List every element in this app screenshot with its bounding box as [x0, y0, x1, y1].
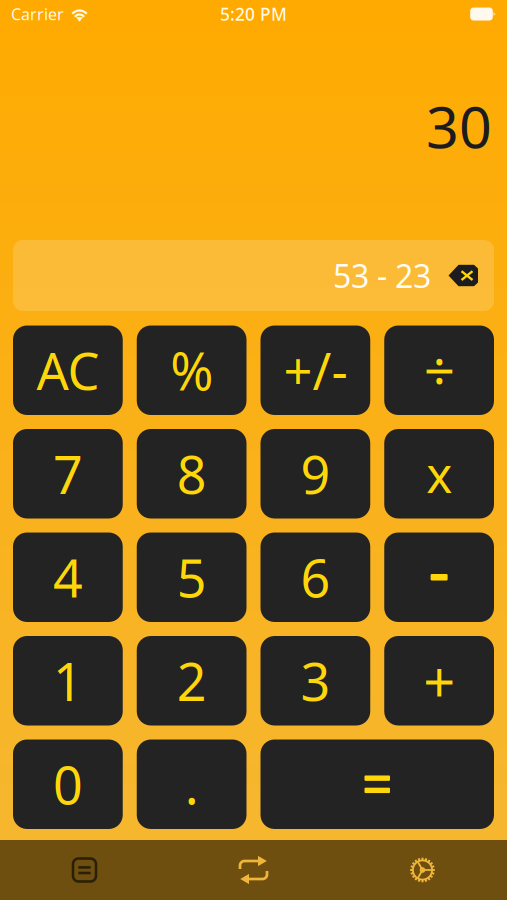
staticText: 9 [300, 439, 330, 508]
button[interactable]: . [137, 739, 247, 829]
staticText: 1 [53, 646, 83, 715]
button[interactable]: + [384, 636, 494, 725]
staticText: % [170, 336, 213, 405]
button[interactable]: Equals [260, 739, 494, 829]
staticText: x [426, 441, 452, 506]
button[interactable]: 5 [137, 532, 247, 622]
button[interactable]: Delete [448, 263, 478, 288]
staticText: 8 [177, 439, 207, 508]
staticText: 7 [53, 439, 83, 508]
button[interactable]: 3 [260, 636, 370, 725]
button[interactable]: % [137, 325, 247, 415]
staticText: + [423, 644, 455, 718]
button[interactable]: 2 [137, 636, 247, 725]
button[interactable]: 0 [13, 739, 123, 829]
button[interactable]: x [384, 429, 494, 518]
button[interactable]: Converter [169, 840, 338, 900]
staticText: 5:20 PM [220, 2, 287, 25]
staticText: 6 [300, 543, 330, 612]
staticText: 4 [53, 543, 83, 612]
button[interactable]: AC [13, 325, 123, 415]
button[interactable]: Calculator [0, 840, 169, 900]
staticText: 53 - 23 [333, 254, 431, 297]
staticText: AC [36, 337, 99, 404]
button[interactable]: 9 [260, 429, 370, 518]
button[interactable]: 1 [13, 636, 123, 725]
staticText: ÷ [424, 334, 455, 407]
staticText: . [185, 750, 199, 819]
button[interactable]: 6 [260, 532, 370, 622]
button[interactable]: 7 [13, 429, 123, 518]
staticText: +/- [283, 337, 347, 404]
staticText: 2 [177, 646, 207, 715]
button[interactable]: Minus [384, 532, 494, 622]
staticText: 3 [300, 646, 330, 715]
staticText: 30 [426, 88, 492, 164]
staticText: 5 [177, 543, 207, 612]
button[interactable]: ÷ [384, 325, 494, 415]
button[interactable]: +/- [260, 325, 370, 415]
staticText: 0 [53, 750, 83, 819]
button[interactable]: 4 [13, 532, 123, 622]
staticText: Carrier [11, 3, 64, 25]
button[interactable]: Settings [338, 840, 507, 900]
button[interactable]: 8 [137, 429, 247, 518]
